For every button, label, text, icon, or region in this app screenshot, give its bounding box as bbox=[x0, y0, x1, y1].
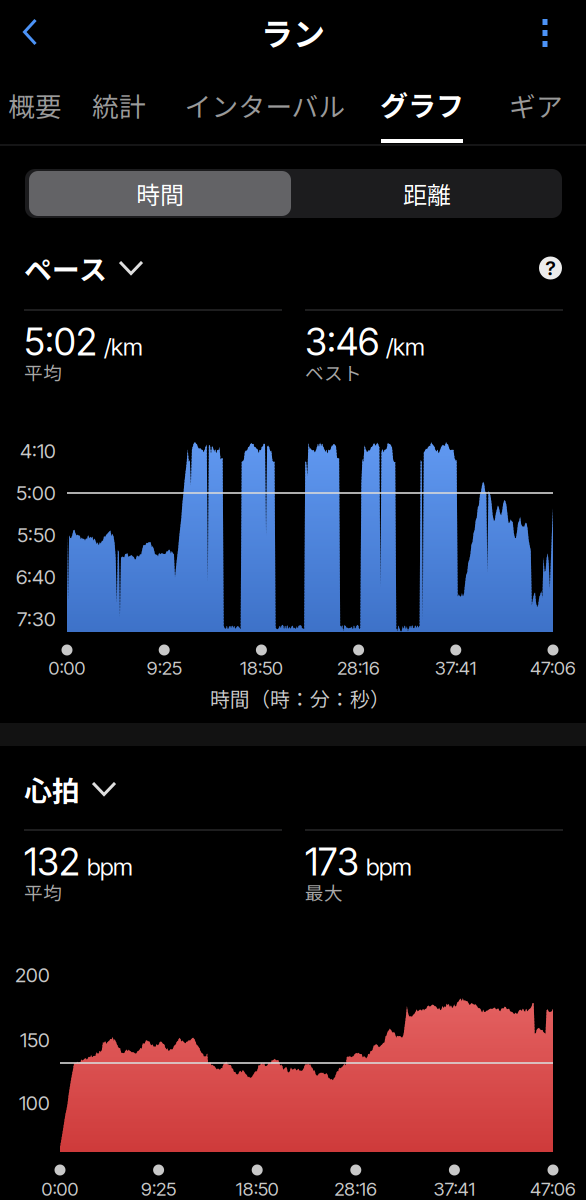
staticText: 最大 bbox=[305, 878, 343, 905]
staticText: 9:25 bbox=[147, 657, 182, 679]
staticText: 3:46 bbox=[305, 319, 379, 365]
staticText: 37:41 bbox=[433, 1178, 475, 1200]
staticText: bpm bbox=[366, 852, 412, 881]
staticText: 18:50 bbox=[240, 657, 283, 679]
staticText: 5:00 bbox=[16, 481, 56, 505]
staticText: 150 bbox=[20, 1028, 50, 1052]
staticText: /km bbox=[386, 332, 425, 361]
staticText: 28:16 bbox=[334, 1178, 377, 1200]
staticText: 0:00 bbox=[41, 1178, 78, 1200]
staticText: 6:40 bbox=[16, 565, 56, 589]
button[interactable]: 概要 bbox=[0, 73, 72, 137]
button[interactable]: More options bbox=[517, 5, 573, 61]
staticText: 平均 bbox=[24, 878, 62, 905]
staticText: 4:10 bbox=[20, 439, 56, 463]
button[interactable]: グラフ bbox=[370, 65, 474, 143]
staticText: 時間（時：分：秒） bbox=[210, 683, 390, 712]
button[interactable]: ペース bbox=[24, 244, 144, 292]
staticText: 統計 bbox=[92, 86, 146, 124]
staticText: bpm bbox=[87, 852, 133, 881]
staticText: 0:00 bbox=[48, 657, 85, 679]
staticText: 7:30 bbox=[17, 607, 56, 631]
staticText: 5:50 bbox=[17, 523, 56, 547]
staticText: 5:02 bbox=[24, 319, 97, 365]
staticText: 200 bbox=[15, 963, 50, 987]
staticText: 100 bbox=[19, 1091, 50, 1115]
button[interactable]: 時間 bbox=[27, 169, 293, 218]
button[interactable]: 心拍 bbox=[24, 765, 117, 813]
staticText: 132 bbox=[24, 839, 80, 885]
staticText: グラフ bbox=[380, 84, 464, 124]
button[interactable]: Back bbox=[2, 4, 58, 60]
staticText: ベスト bbox=[305, 358, 362, 385]
button[interactable]: 統計 bbox=[82, 73, 156, 137]
staticText: ペース bbox=[24, 248, 107, 288]
staticText: 37:41 bbox=[435, 657, 477, 679]
staticText: 距離 bbox=[403, 176, 451, 211]
staticText: /km bbox=[104, 332, 143, 361]
staticText: 平均 bbox=[24, 358, 62, 385]
staticText: ラン bbox=[261, 9, 325, 55]
staticText: 28:16 bbox=[337, 657, 380, 679]
staticText: インターバル bbox=[184, 86, 345, 124]
staticText: 9:25 bbox=[141, 1178, 176, 1200]
button[interactable]: ギア bbox=[499, 73, 573, 137]
staticText: 心拍 bbox=[24, 769, 80, 809]
button[interactable]: Help bbox=[539, 256, 562, 279]
button[interactable]: 距離 bbox=[294, 169, 560, 218]
button[interactable]: インターバル bbox=[183, 73, 347, 137]
staticText: ? bbox=[545, 256, 555, 280]
staticText: 47:06 bbox=[530, 657, 576, 679]
staticText: 18:50 bbox=[236, 1178, 279, 1200]
staticText: ギア bbox=[509, 86, 563, 124]
staticText: 時間 bbox=[136, 176, 184, 211]
staticText: 173 bbox=[305, 839, 359, 885]
staticText: 概要 bbox=[8, 86, 62, 124]
staticText: 47:06 bbox=[530, 1178, 576, 1200]
